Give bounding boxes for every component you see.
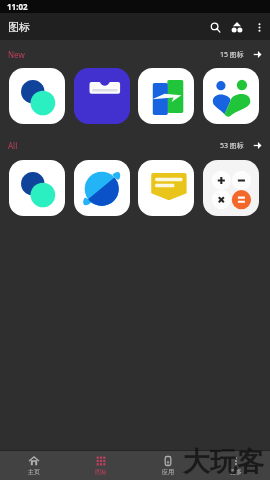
staticText: 更多 xyxy=(230,468,242,476)
button[interactable]: App icon xyxy=(74,68,130,124)
staticText: 图标 xyxy=(95,468,107,476)
staticText: 15 图标 xyxy=(220,50,244,60)
staticText: 53 图标 xyxy=(220,141,244,151)
button[interactable]: App icon xyxy=(9,68,65,124)
staticText: 图标 xyxy=(8,20,30,34)
staticText: 主页 xyxy=(28,468,40,476)
button[interactable]: Search xyxy=(204,16,226,38)
button[interactable]: Categories xyxy=(226,16,248,38)
button[interactable]: App icon xyxy=(203,68,259,124)
button[interactable]: 更多 xyxy=(202,451,270,480)
button[interactable]: More options xyxy=(248,16,270,38)
button[interactable]: App icon xyxy=(9,160,65,216)
button[interactable]: 图标 xyxy=(67,451,134,480)
staticText: 11:02 xyxy=(7,1,28,12)
button[interactable]: App icon xyxy=(74,160,130,216)
staticText: 应用 xyxy=(162,468,174,476)
staticText: 大玩客 xyxy=(183,445,264,479)
button[interactable]: New xyxy=(0,45,270,64)
button[interactable]: All xyxy=(0,136,270,155)
button[interactable]: 应用 xyxy=(134,451,202,480)
staticText: All xyxy=(8,140,18,151)
button[interactable]: App icon xyxy=(138,160,194,216)
button[interactable]: App icon xyxy=(138,68,194,124)
button[interactable]: App icon xyxy=(203,160,259,216)
staticText: New xyxy=(8,49,25,60)
button[interactable]: 主页 xyxy=(0,451,67,480)
